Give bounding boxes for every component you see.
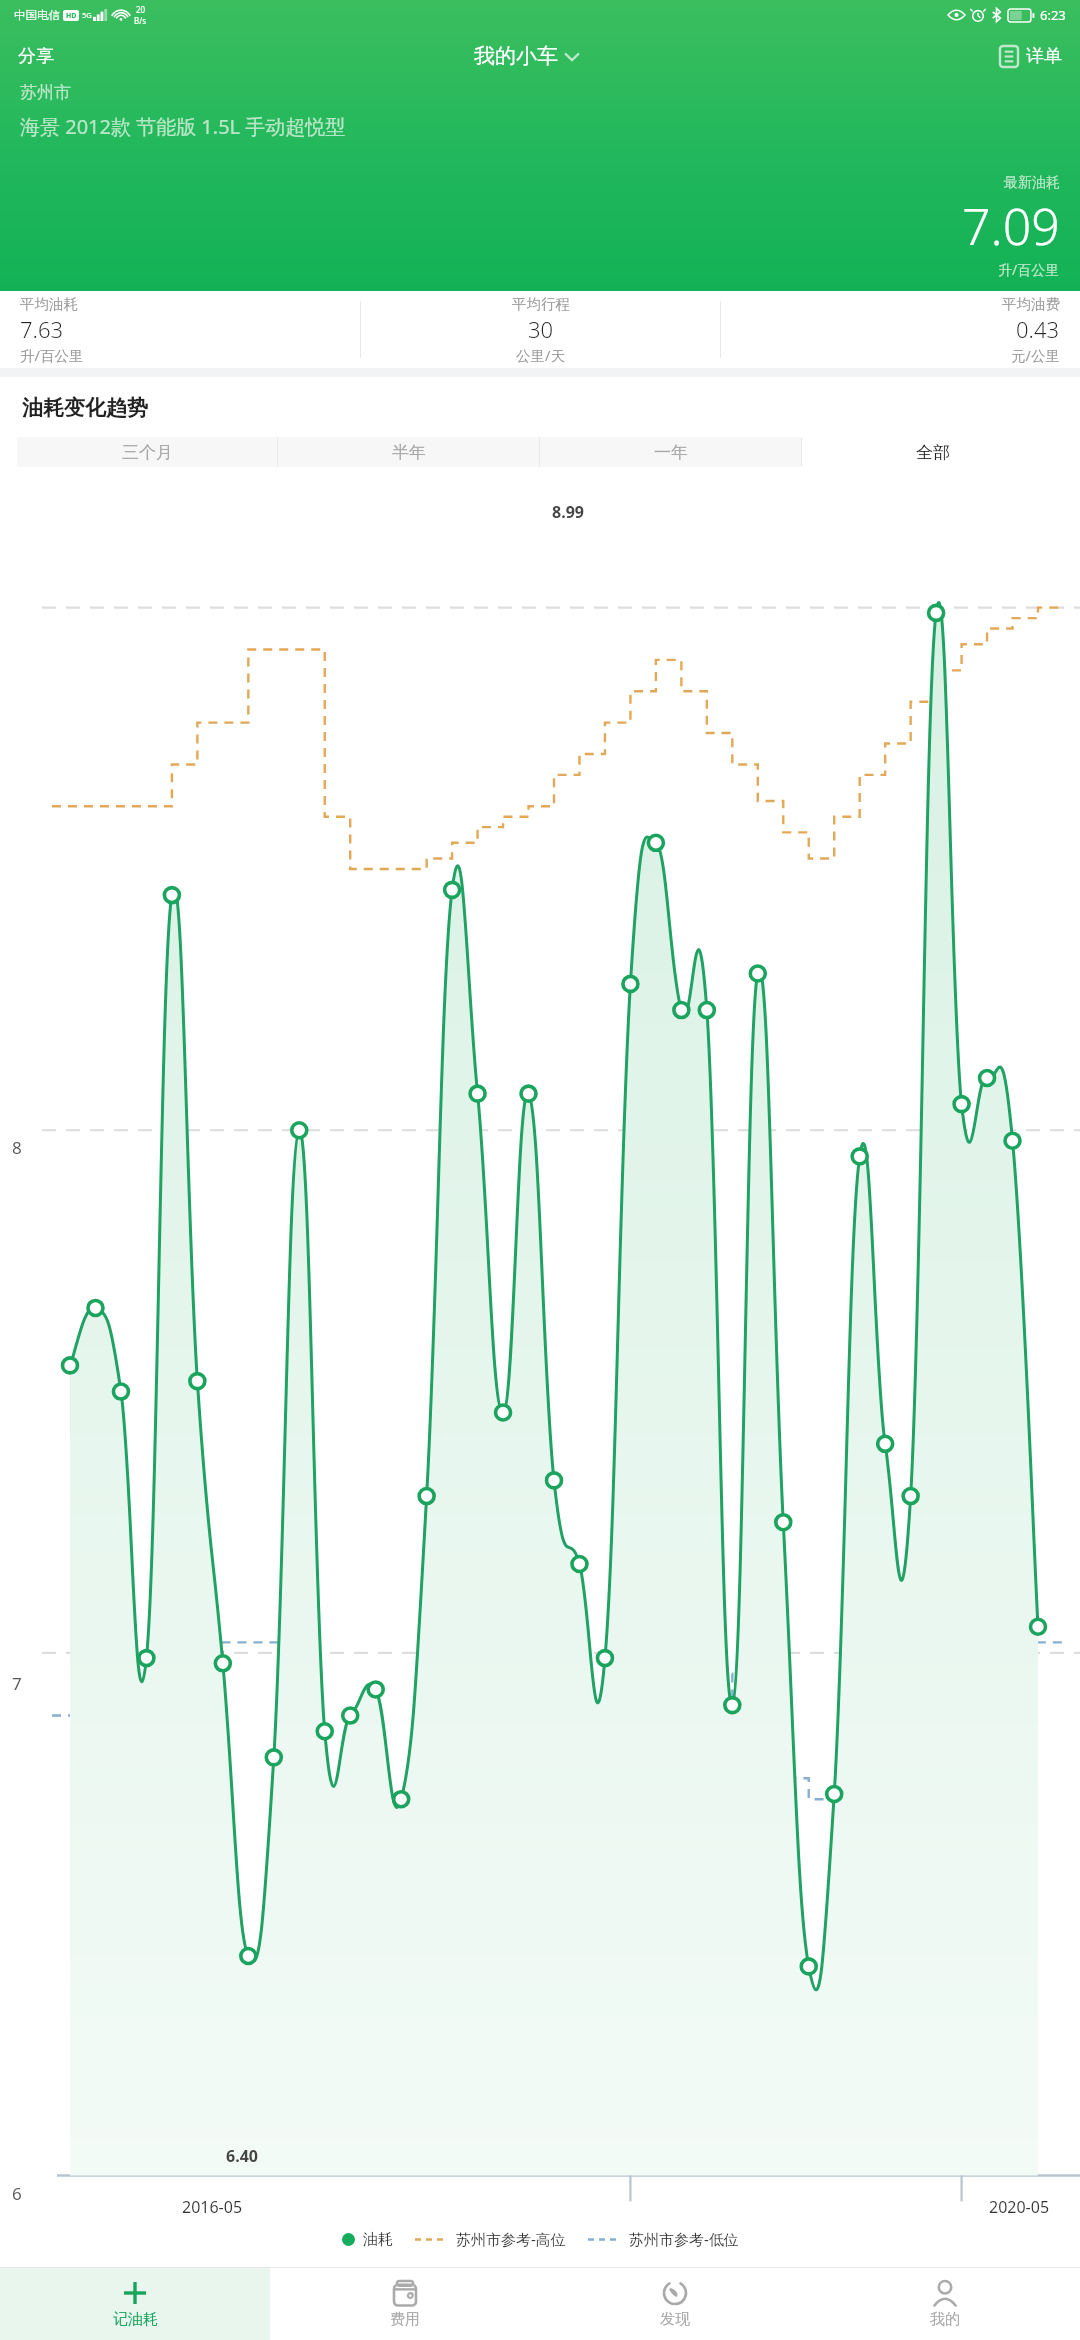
button[interactable]: 发现 [540,2268,810,2340]
button[interactable]: 一年 [540,437,801,467]
staticText: 油耗 [363,2230,393,2249]
staticText: 8 [12,1136,22,1159]
staticText: 公里/天 [516,345,565,365]
staticText: 6.40 [226,2145,258,2167]
staticText: 三个月 [122,442,173,463]
button[interactable]: 半年 [278,437,539,467]
staticText: 我的小车 [474,43,558,69]
staticText: 分享 [18,45,54,68]
staticText: 2020-05 [989,2196,1050,2218]
other: 发现 [662,2280,688,2306]
staticText: 升/百公里 [998,260,1060,279]
staticText: 发现 [660,2310,690,2329]
staticText: 2016-05 [182,2196,243,2218]
staticText: 油耗变化趋势 [22,395,148,421]
button[interactable]: 平均行程 [361,295,720,365]
staticText: 最新油耗 [1004,174,1060,192]
staticText: 7.09 [962,192,1060,260]
button[interactable]: 费用 [270,2268,540,2340]
button[interactable]: 我的小车 [468,37,585,75]
staticText: 6:23 [1040,6,1066,24]
staticText: 7.63 [20,314,64,344]
staticText: 中国电信 [14,8,60,22]
button[interactable]: 三个月 [17,437,277,467]
button[interactable]: 分享 [0,39,64,74]
staticText: 半年 [392,442,426,463]
button[interactable]: 平均油耗 [0,295,360,365]
staticText: 7 [12,1672,22,1695]
staticText: 我的 [930,2310,960,2329]
staticText: 平均行程 [512,295,570,313]
staticText: B/s [134,15,147,26]
button[interactable]: 记油耗 [0,2268,270,2340]
other: 费用 [393,2280,417,2306]
staticText: 8.99 [552,501,584,523]
button[interactable]: 全部 [802,437,1063,467]
staticText: 苏州市参考-低位 [629,2229,739,2249]
staticText: 苏州市 [20,82,71,103]
other: 记油耗 [122,2280,148,2306]
staticText: 苏州市参考-高位 [456,2229,566,2249]
staticText: 30 [528,314,554,344]
staticText: 全部 [916,442,950,463]
button[interactable]: 平均油费 [721,295,1080,365]
staticText: 详单 [1026,45,1062,68]
staticText: 20 [136,4,146,15]
staticText: 0.43 [1016,314,1060,344]
staticText: 一年 [654,442,688,463]
staticText: 平均油费 [1002,295,1060,313]
other: 我的 [933,2280,957,2306]
staticText: 费用 [390,2310,420,2329]
staticText: 海景 2012款 节能版 1.5L 手动超悦型 [20,113,346,140]
staticText: 记油耗 [113,2310,158,2329]
button[interactable]: 详单 [990,39,1080,74]
staticText: HD [66,11,77,21]
staticText: 升/百公里 [20,345,84,365]
staticText: 平均油耗 [20,295,78,313]
staticText: 5G [82,10,92,20]
staticText: 6 [12,2182,22,2205]
staticText: 元/公里 [1011,345,1060,365]
button[interactable]: 我的 [810,2268,1080,2340]
